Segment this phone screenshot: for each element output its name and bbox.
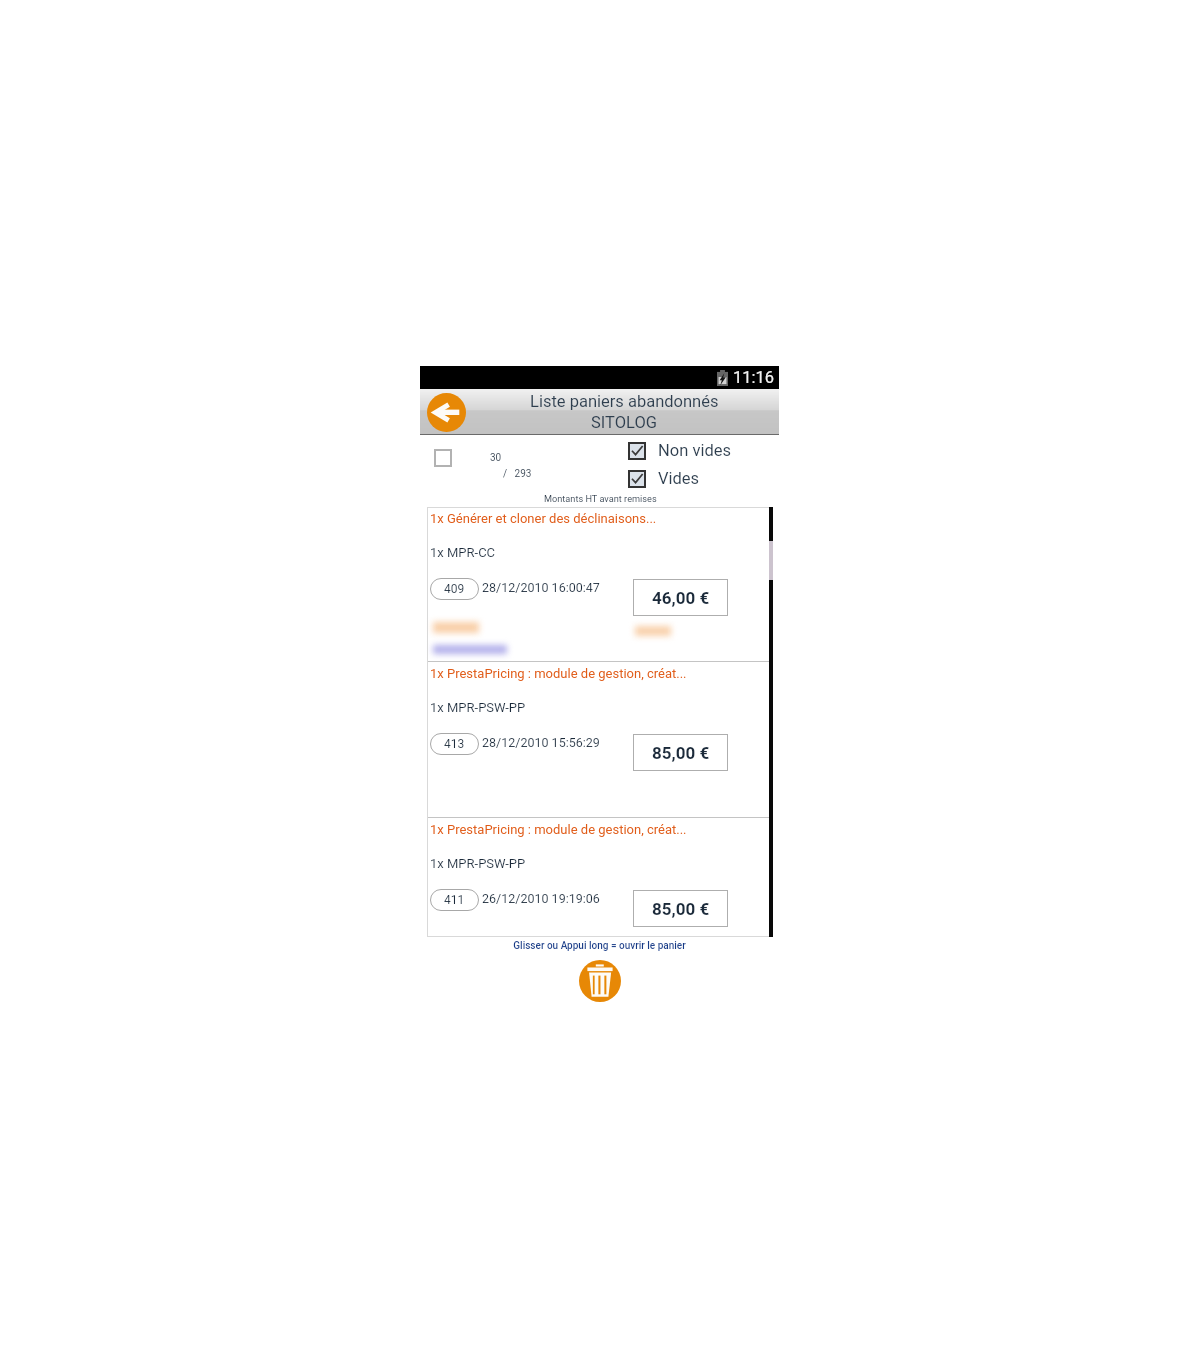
- button[interactable]: 1x Générer et cloner des déclinaisons...: [427, 507, 773, 661]
- button[interactable]: Delete: [579, 960, 621, 1002]
- button[interactable]: Back: [427, 393, 466, 432]
- staticText: Liste paniers abandonnés: [530, 392, 719, 411]
- staticText: 1x MPR-CC: [430, 545, 496, 560]
- staticText: 1x MPR-PSW-PP: [430, 700, 526, 715]
- staticText: SITOLOG: [591, 413, 657, 432]
- button[interactable]: Non vides: [628, 441, 731, 460]
- staticText: 11:16: [733, 368, 775, 387]
- staticText: 85,00 €: [652, 743, 710, 763]
- staticText: Vides: [658, 469, 700, 488]
- staticText: 1x PrestaPricing : module de gestion, cr…: [430, 666, 687, 681]
- staticText: 30: [490, 452, 502, 464]
- button[interactable]: Select all: [434, 449, 452, 467]
- button[interactable]: Vides: [628, 469, 700, 488]
- staticText: 413: [444, 737, 465, 751]
- staticText: 1x Générer et cloner des déclinaisons...: [430, 511, 657, 526]
- staticText: 28/12/2010 16:00:47: [482, 580, 600, 595]
- staticText: 1x PrestaPricing : module de gestion, cr…: [430, 822, 687, 837]
- staticText: Glisser ou Appui long = ouvrir le panier: [513, 940, 686, 952]
- staticText: Montants HT avant remises: [544, 493, 657, 504]
- staticText: 411: [444, 893, 465, 907]
- button[interactable]: 1x PrestaPricing : module de gestion, cr…: [427, 662, 773, 817]
- staticText: 85,00 €: [652, 899, 710, 919]
- staticText: 1x MPR-PSW-PP: [430, 856, 526, 871]
- button[interactable]: 1x PrestaPricing : module de gestion, cr…: [427, 818, 773, 935]
- staticText: 409: [444, 582, 465, 596]
- staticText: 46,00 €: [652, 588, 710, 608]
- staticText: 28/12/2010 15:56:29: [482, 735, 600, 750]
- staticText: / 293: [503, 468, 532, 480]
- staticText: 26/12/2010 19:19:06: [482, 891, 600, 906]
- staticText: Non vides: [658, 441, 731, 460]
